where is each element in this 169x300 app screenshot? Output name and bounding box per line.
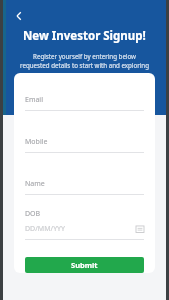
staticText: Submit <box>71 260 98 270</box>
button[interactable]: Submit <box>25 257 144 273</box>
button[interactable]: Back <box>10 7 28 25</box>
staticText: Name <box>25 179 45 189</box>
button[interactable]: Mobile <box>25 137 144 153</box>
button[interactable]: Name <box>25 179 144 195</box>
other: Pick date <box>136 225 144 233</box>
staticText: DD/MM/YYY <box>25 224 66 234</box>
staticText: Email <box>25 95 43 105</box>
staticText: Mobile <box>25 137 48 147</box>
staticText: New Investor Signup! <box>23 28 146 44</box>
button[interactable]: DOB <box>25 209 144 240</box>
staticText: Register yourself by entering below requ… <box>18 52 151 80</box>
button[interactable]: Email <box>25 95 144 111</box>
staticText: DOB <box>25 209 41 219</box>
